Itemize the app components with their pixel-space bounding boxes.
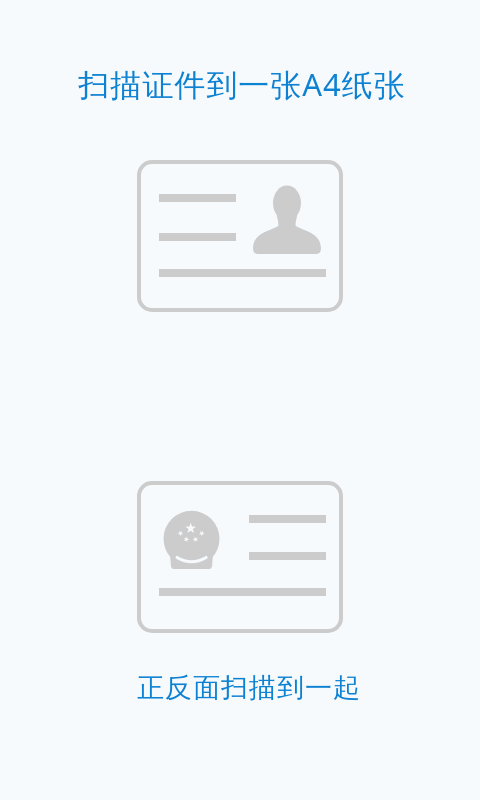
- button[interactable]: 身份证反面: [137, 481, 343, 633]
- staticText: 扫描证件到一张A4纸张: [2, 63, 480, 105]
- button[interactable]: 身份证正面: [137, 160, 343, 312]
- staticText: 正反面扫描到一起: [9, 671, 480, 705]
